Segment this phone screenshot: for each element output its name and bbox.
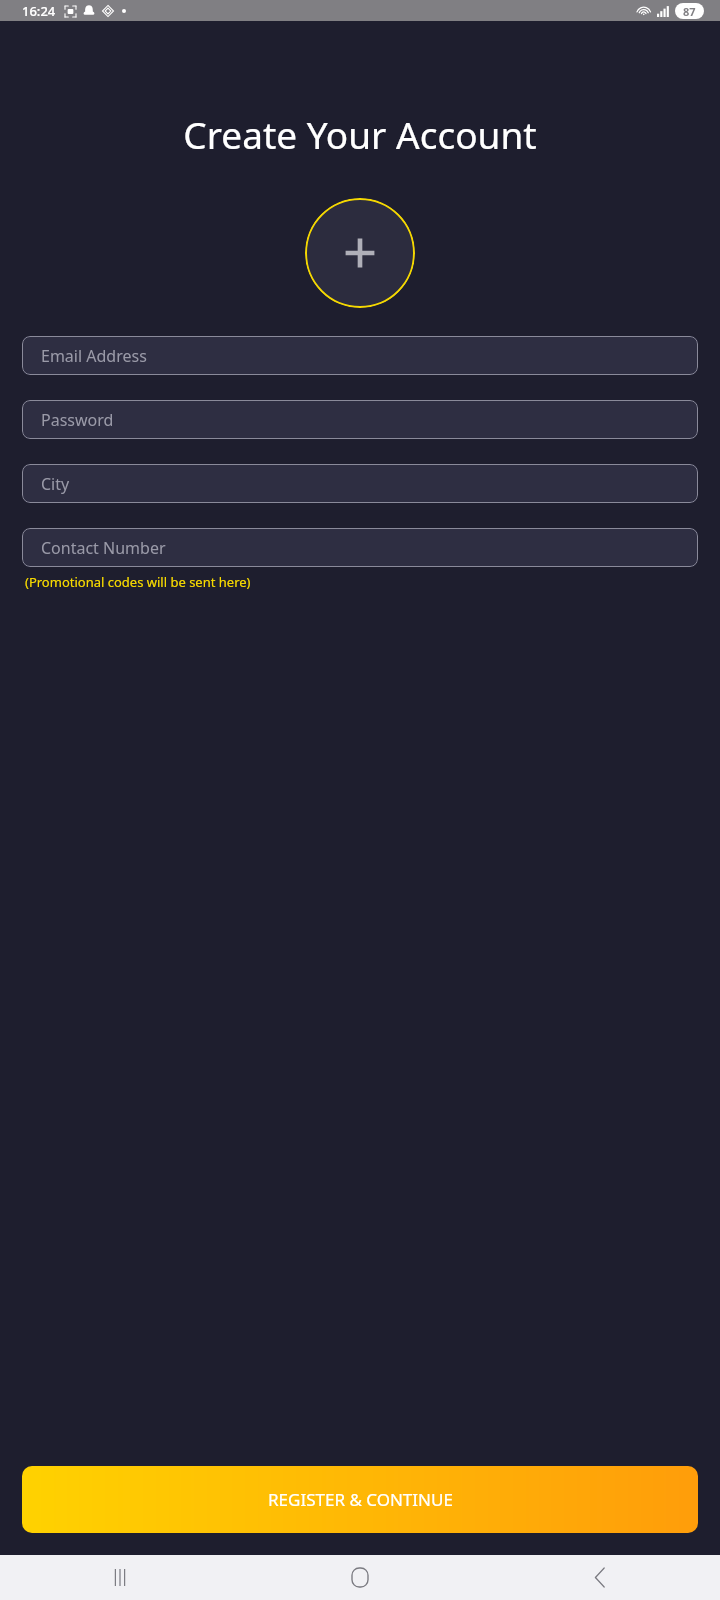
- button[interactable]: Email Address: [22, 336, 698, 375]
- button[interactable]: City: [22, 464, 698, 503]
- staticText: Email Address: [41, 345, 147, 367]
- staticText: REGISTER & CONTINUE: [268, 1488, 453, 1511]
- staticText: Contact Number: [41, 537, 166, 559]
- staticText: Password: [41, 409, 114, 431]
- button[interactable]: REGISTER & CONTINUE: [22, 1466, 698, 1533]
- staticText: 16:24: [22, 2, 56, 20]
- staticText: City: [41, 473, 70, 495]
- button[interactable]: Password: [22, 400, 698, 439]
- button[interactable]: Add profile photo: [305, 198, 415, 308]
- staticText: Create Your Account: [183, 109, 537, 159]
- button[interactable]: Contact Number: [22, 528, 698, 567]
- staticText: 87: [683, 4, 696, 19]
- button[interactable]: Back: [480, 1555, 720, 1600]
- button[interactable]: Recent apps: [0, 1555, 240, 1600]
- button[interactable]: Home: [240, 1555, 480, 1600]
- staticText: (Promotional codes will be sent here): [25, 573, 251, 591]
